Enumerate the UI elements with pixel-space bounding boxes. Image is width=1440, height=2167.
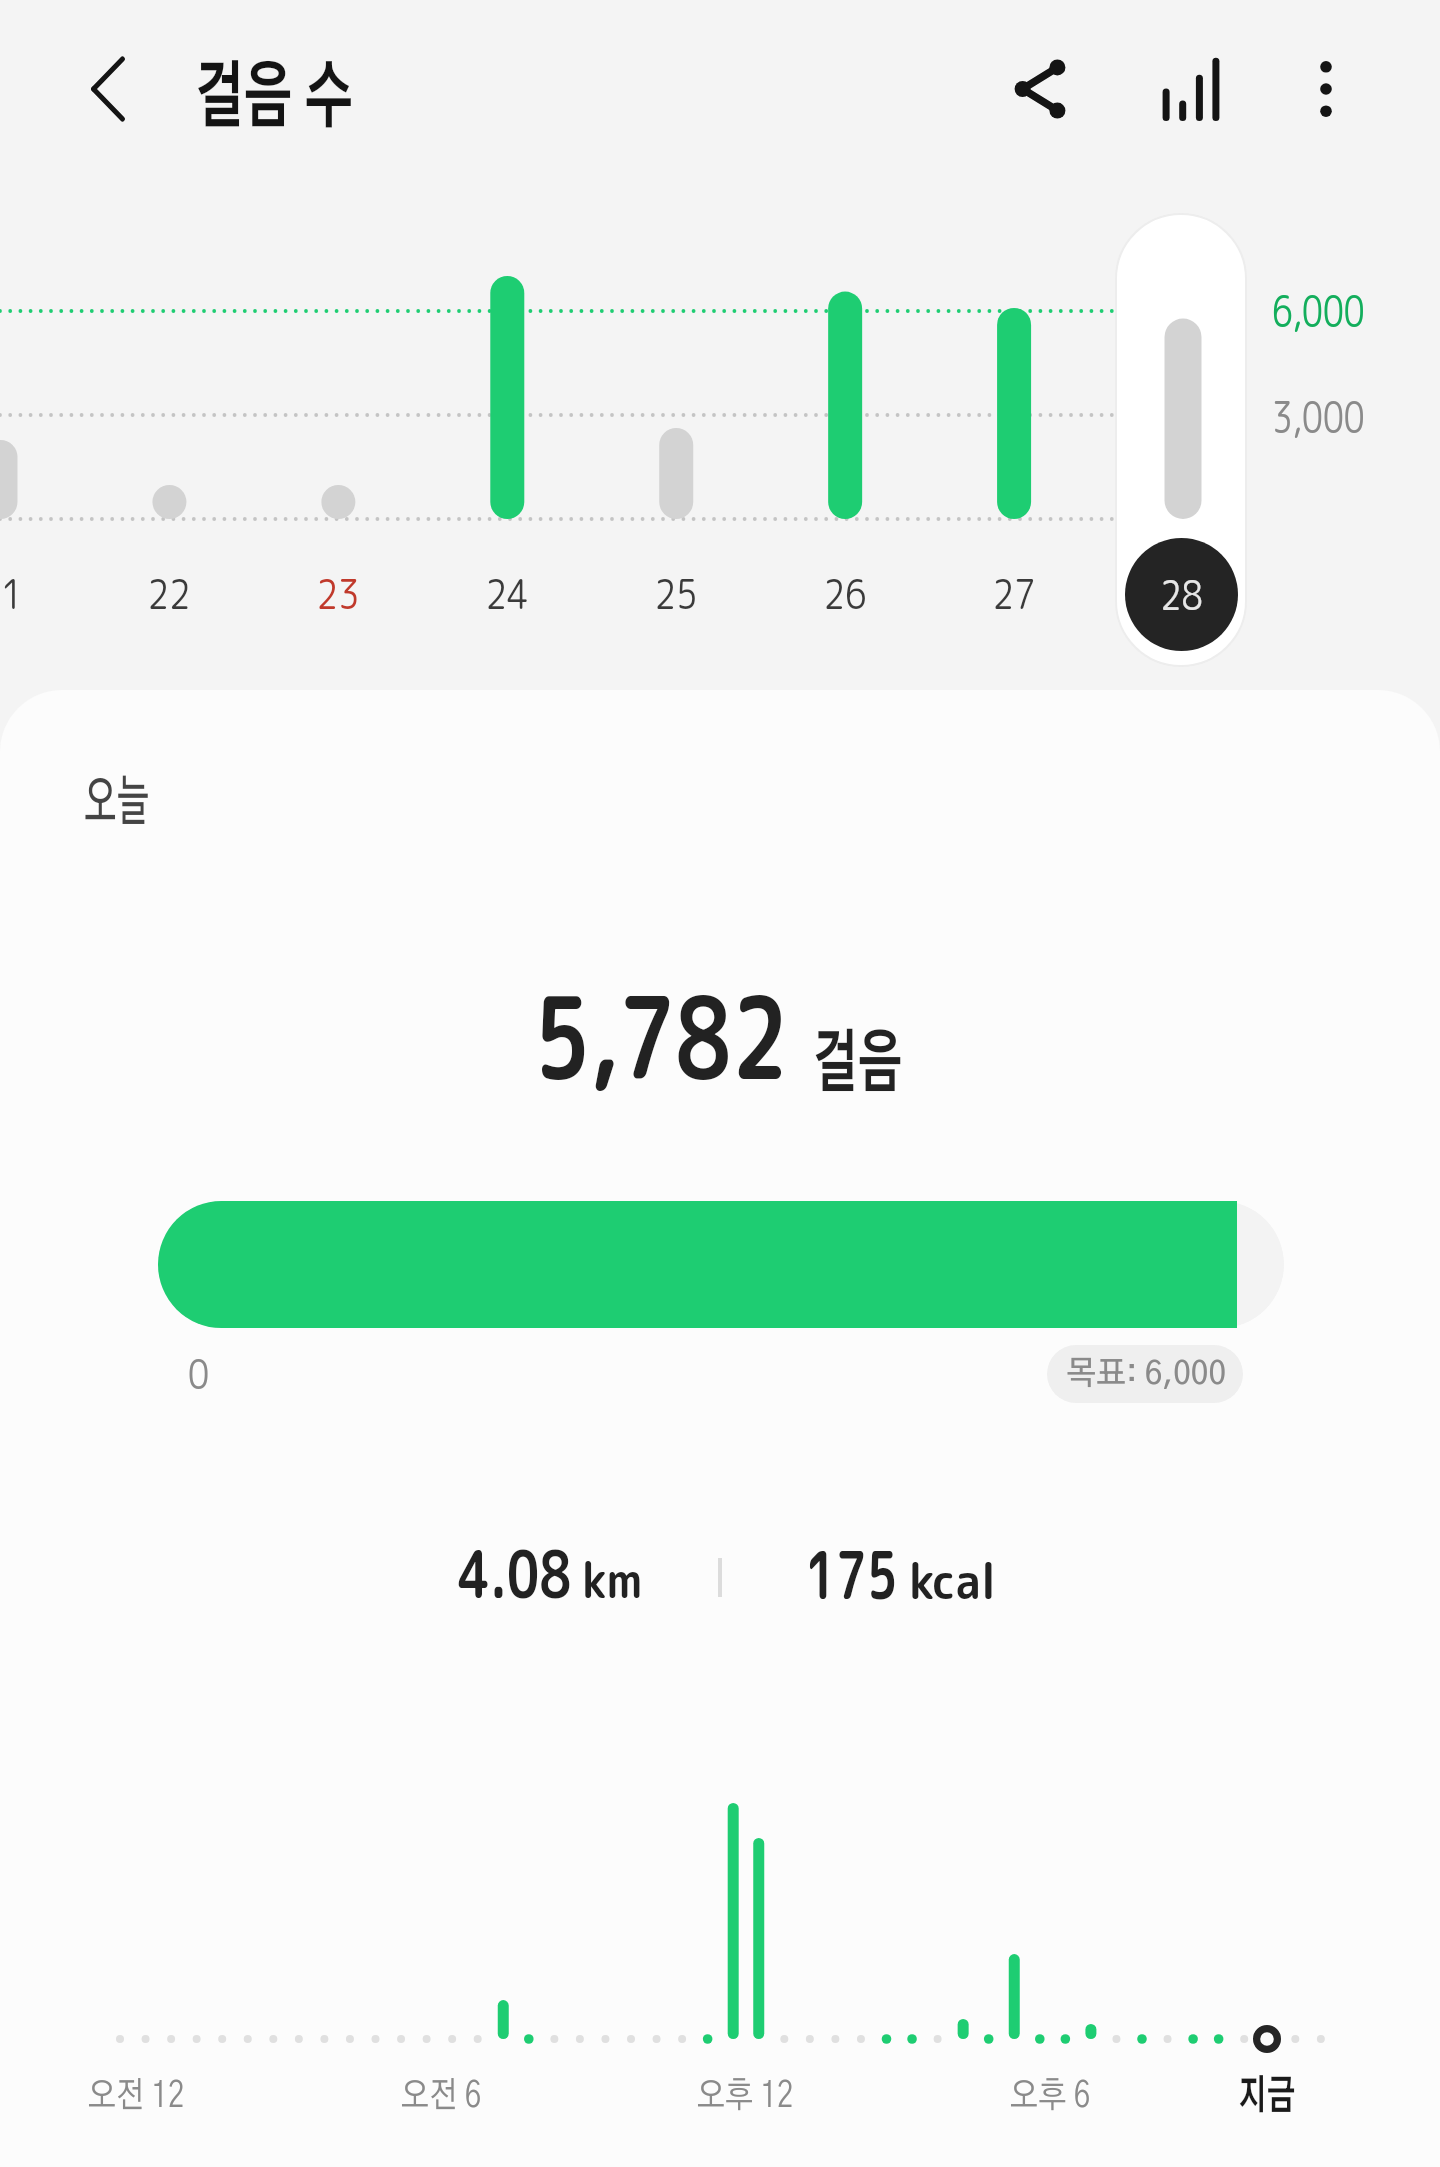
staticText: kcal	[909, 1547, 996, 1614]
staticText: 걸음 수	[195, 64, 353, 136]
staticText: 22	[101, 565, 237, 622]
staticText: 25	[608, 565, 744, 622]
staticText: 오늘	[84, 776, 149, 831]
button[interactable]: Day 22	[89, 214, 249, 666]
button[interactable]: Day 25	[596, 214, 756, 666]
staticText: 23	[270, 565, 406, 622]
button[interactable]	[158, 1201, 1284, 1328]
staticText: 오후 6	[919, 2078, 1181, 2114]
staticText: 4.08	[458, 1527, 572, 1619]
staticText: 26	[777, 565, 913, 622]
staticText: 걸음	[813, 1032, 903, 1100]
staticText: 24	[439, 565, 575, 622]
button[interactable]: Day 26	[765, 214, 925, 666]
staticText: 5,782	[534, 958, 788, 1116]
button[interactable]: Back	[48, 29, 168, 149]
staticText: 지금	[1152, 2077, 1382, 2117]
button[interactable]: More options	[1266, 29, 1386, 149]
staticText: 21	[0, 565, 69, 622]
staticText: 27	[946, 565, 1082, 622]
staticText: 목표: 6,000	[1066, 1358, 1227, 1391]
button[interactable]: Day 23	[258, 214, 418, 666]
button[interactable]: 28	[1125, 538, 1238, 651]
staticText: km	[582, 1546, 643, 1613]
staticText: 오전 12	[5, 2078, 267, 2114]
button[interactable]: Share	[980, 29, 1100, 149]
staticText: 28	[1134, 566, 1229, 623]
staticText: 오후 12	[614, 2078, 876, 2114]
staticText: 0	[188, 1345, 210, 1402]
staticText: 오전 6	[310, 2078, 572, 2114]
button[interactable]: Chart	[1131, 29, 1251, 149]
staticText: 175	[805, 1528, 898, 1620]
button[interactable]: Day 21	[0, 214, 81, 666]
staticText: 3,000	[1272, 387, 1365, 447]
button[interactable]: Day 24	[427, 214, 587, 666]
button[interactable]: Day 27	[934, 214, 1094, 666]
staticText: 6,000	[1272, 281, 1365, 341]
button[interactable]: 걸음 수	[184, 36, 444, 150]
